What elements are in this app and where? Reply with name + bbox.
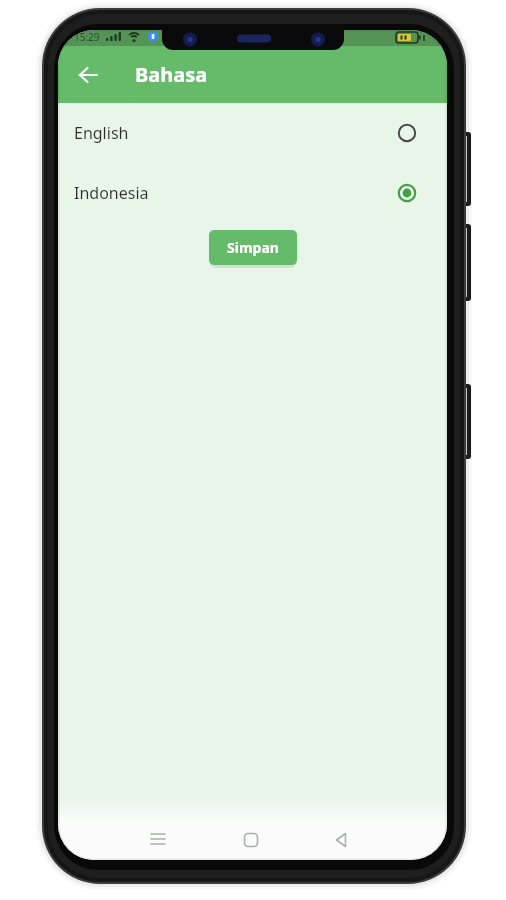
button[interactable]: [66, 53, 110, 97]
button[interactable]: [229, 820, 273, 860]
button[interactable]: [319, 820, 363, 860]
staticText: Simpan: [227, 238, 279, 257]
staticText: Bahasa: [135, 61, 208, 88]
button[interactable]: Indonesia: [58, 163, 447, 223]
button[interactable]: English: [58, 103, 447, 163]
staticText: English: [74, 122, 129, 144]
button[interactable]: [136, 820, 180, 860]
staticText: Indonesia: [74, 182, 149, 204]
button[interactable]: Simpan: [209, 230, 297, 265]
staticText: 15:29: [74, 30, 100, 44]
